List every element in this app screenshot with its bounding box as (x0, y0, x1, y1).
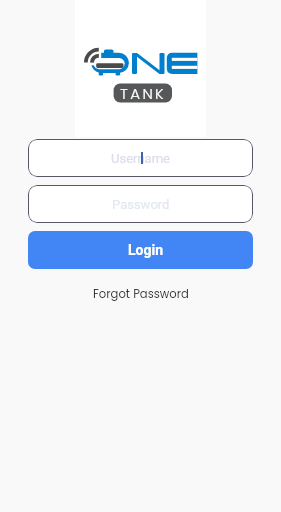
staticText: Password (112, 197, 170, 212)
button[interactable]: Username (28, 139, 253, 177)
button[interactable]: Forgot Password (83, 283, 199, 305)
button[interactable]: Login (28, 231, 253, 269)
staticText: Forgot Password (93, 286, 189, 302)
staticText: TANK (120, 83, 166, 102)
button[interactable]: Password (28, 185, 253, 223)
staticText: Username (111, 151, 170, 166)
staticText: Login (128, 242, 164, 258)
